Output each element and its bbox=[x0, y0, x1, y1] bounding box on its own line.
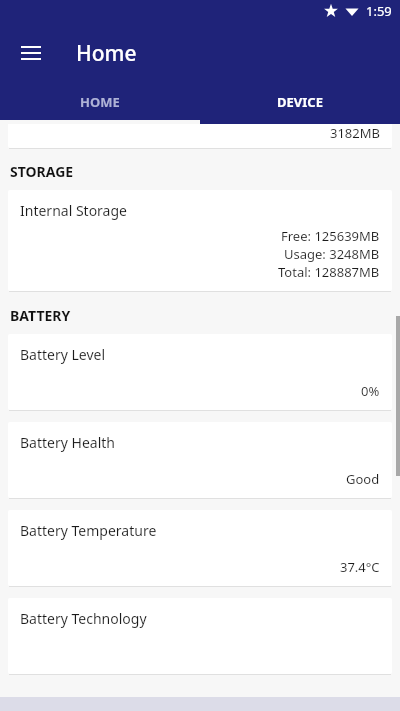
staticText: Battery Level bbox=[20, 345, 106, 364]
staticText: HOME bbox=[80, 93, 120, 111]
button[interactable]: Battery Technology bbox=[8, 598, 392, 674]
staticText: Internal Storage bbox=[20, 201, 127, 220]
staticText: DEVICE bbox=[277, 93, 323, 111]
button[interactable]: 3182MB bbox=[8, 124, 392, 148]
button[interactable]: Battery Level bbox=[8, 334, 392, 410]
button[interactable]: Open navigation menu bbox=[14, 36, 48, 70]
staticText: Free: 125639MB bbox=[281, 227, 380, 245]
button[interactable]: Battery Temperature bbox=[8, 510, 392, 586]
staticText: 3182MB bbox=[330, 124, 380, 142]
staticText: BATTERY bbox=[10, 306, 71, 325]
staticText: STORAGE bbox=[10, 162, 74, 181]
staticText: Battery Technology bbox=[20, 609, 147, 628]
button[interactable]: HOME bbox=[0, 84, 200, 120]
staticText: Good bbox=[346, 470, 380, 488]
staticText: Battery Health bbox=[20, 433, 115, 452]
button[interactable]: Battery Health bbox=[8, 422, 392, 498]
staticText: Home bbox=[76, 39, 137, 68]
staticText: 0% bbox=[361, 382, 380, 400]
staticText: Usage: 3248MB bbox=[284, 245, 380, 263]
button[interactable]: DEVICE bbox=[200, 84, 400, 120]
staticText: 37.4°C bbox=[340, 558, 380, 576]
staticText: Total: 128887MB bbox=[278, 263, 380, 281]
button[interactable]: Internal Storage bbox=[8, 190, 392, 291]
staticText: 1:59 bbox=[366, 2, 392, 20]
staticText: Battery Temperature bbox=[20, 521, 157, 540]
